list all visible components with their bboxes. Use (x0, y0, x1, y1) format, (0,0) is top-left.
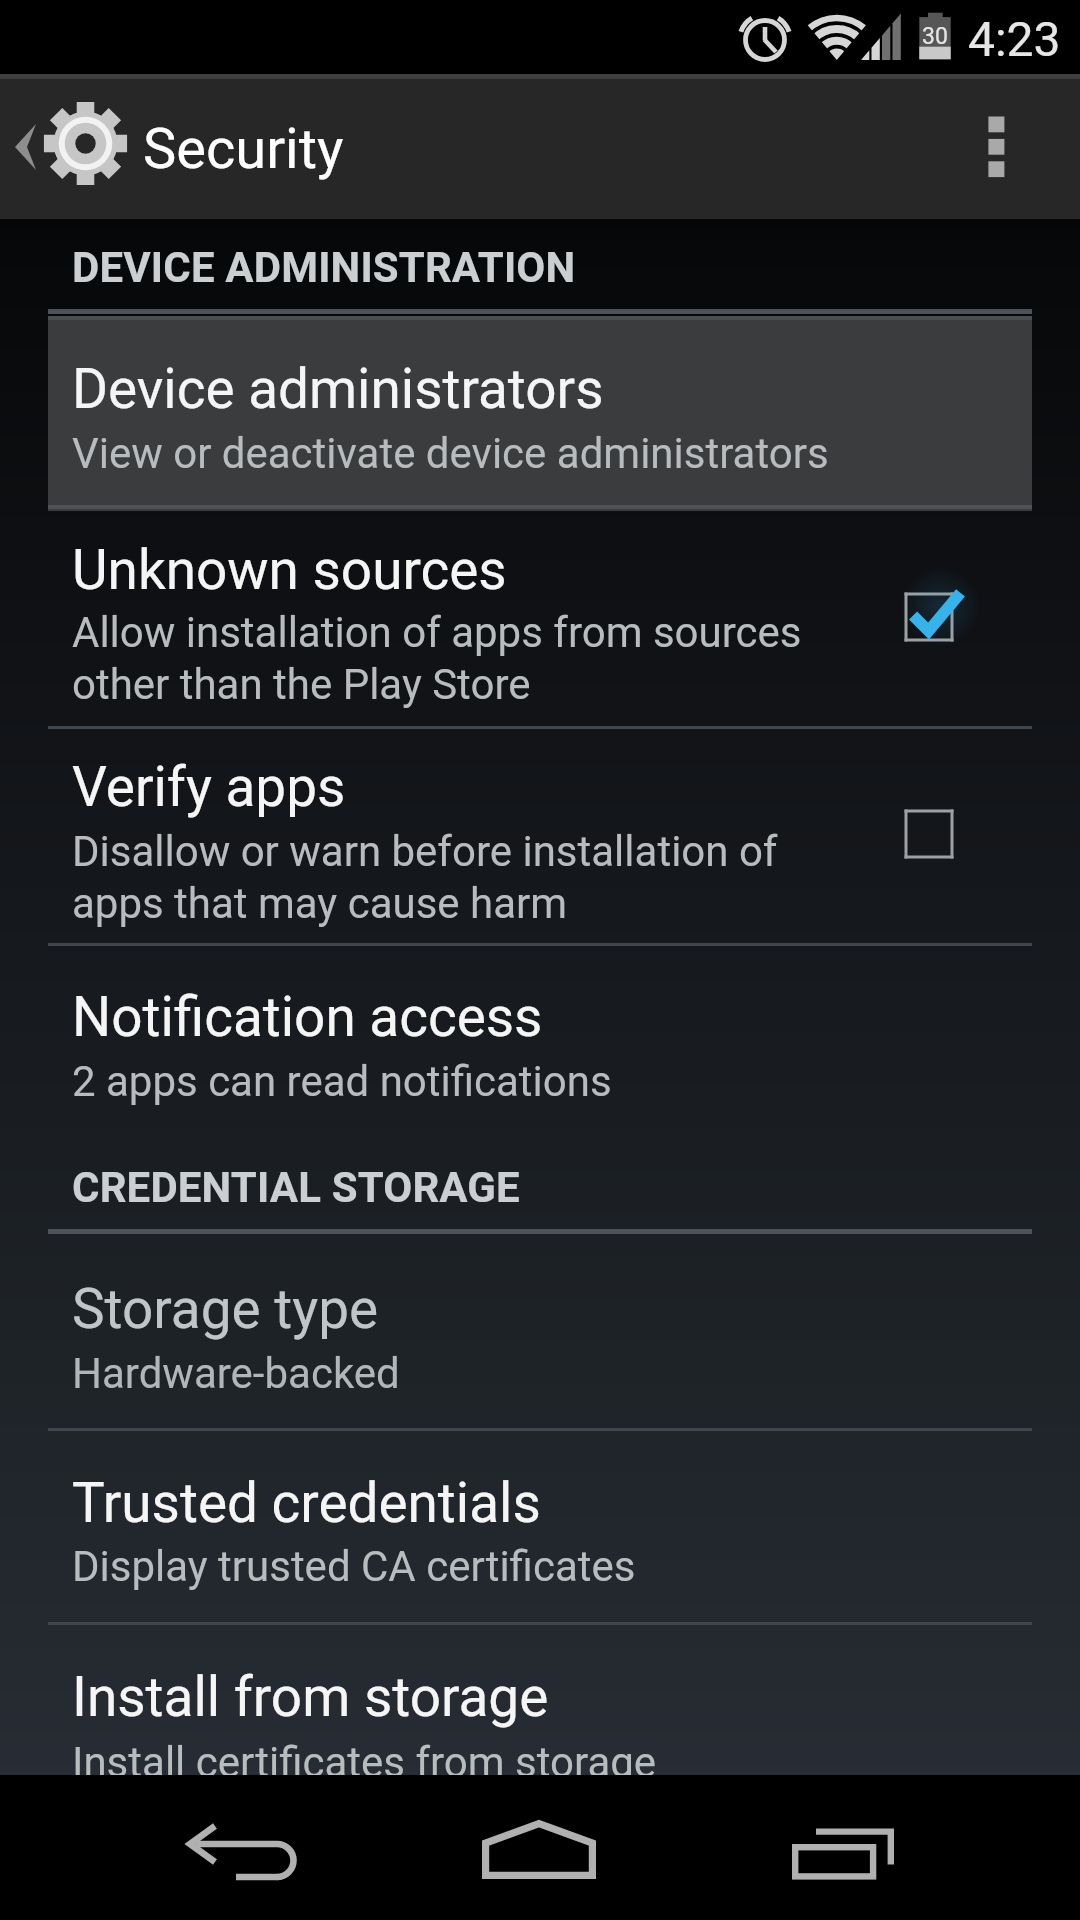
staticText: Storage type (72, 1277, 379, 1341)
staticText: 30 (922, 23, 948, 50)
staticText: Unknown sources (72, 538, 507, 602)
staticText: Security (143, 116, 344, 182)
staticText: Hardware-backed (72, 1349, 400, 1398)
button[interactable]: Install from storage (0, 1625, 1080, 1775)
staticText: 2 apps can read notifications (72, 1057, 612, 1106)
button[interactable]: More options (948, 74, 1080, 219)
staticText: DEVICE ADMINISTRATION (72, 243, 576, 292)
staticText: Display trusted CA certificates (72, 1542, 636, 1591)
staticText: Disallow or warn before installation of … (72, 827, 778, 928)
staticText: CREDENTIAL STORAGE (72, 1163, 520, 1212)
button[interactable]: Navigate up (0, 74, 142, 219)
button[interactable]: Unknown sources (0, 511, 1080, 726)
button[interactable]: Not checked (869, 774, 989, 894)
staticText: Verify apps (72, 755, 346, 819)
button[interactable]: Trusted credentials (0, 1431, 1080, 1622)
staticText: Trusted credentials (72, 1471, 541, 1535)
staticText: Install from storage (72, 1665, 549, 1729)
button[interactable]: Recent apps (720, 1775, 960, 1920)
button[interactable]: Checked (869, 557, 989, 677)
staticText: Device administrators (72, 357, 604, 421)
button[interactable]: Device administrators (48, 316, 1032, 511)
button[interactable]: Home (420, 1775, 660, 1920)
button[interactable]: Notification access (0, 946, 1080, 1140)
staticText: Notification access (72, 985, 543, 1049)
staticText: 4:23 (968, 11, 1061, 67)
button[interactable]: Verify apps (0, 729, 1080, 943)
staticText: Install certificates from storage (72, 1738, 657, 1787)
staticText: Allow installation of apps from sources … (72, 608, 802, 709)
button[interactable]: Storage type (0, 1234, 1080, 1428)
button[interactable]: Back (120, 1775, 360, 1920)
staticText: View or deactivate device administrators (72, 429, 829, 478)
